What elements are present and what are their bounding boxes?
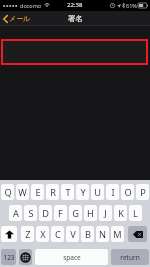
staticText: space [63,253,81,262]
button[interactable]: A [9,205,22,221]
staticText: C [55,228,61,241]
staticText: docomo [20,2,42,9]
staticText: 22:38 [67,1,83,9]
staticText: 署名 [68,14,83,23]
button[interactable]: B [81,226,94,242]
staticText: F [58,207,63,220]
staticText: メール [9,14,31,23]
button[interactable]: N [96,226,109,242]
staticText: J [104,207,107,220]
button[interactable]: 123 [1,249,16,265]
button[interactable]: E [31,184,44,200]
button[interactable]: K [114,205,127,221]
staticText: V [70,228,76,241]
button[interactable]: X [36,226,49,242]
staticText: R [50,186,56,199]
button[interactable]: T [61,184,74,200]
button[interactable]: V [66,226,79,242]
staticText: 123 [3,253,15,262]
staticText: K [118,207,124,220]
button[interactable]: W [16,184,29,200]
button[interactable]: Q [1,184,14,200]
button[interactable]: F [54,205,67,221]
staticText: H [87,207,94,220]
staticText: return [120,253,140,262]
staticText: U [94,186,101,199]
staticText: X [40,228,46,241]
staticText: W [18,186,27,199]
button[interactable]: O [121,184,134,200]
button[interactable]: Shift [1,226,17,242]
button[interactable]: C [51,226,64,242]
staticText: B [85,228,91,241]
button[interactable]: L [129,205,142,221]
staticText: I [111,186,115,199]
button[interactable]: return [111,249,149,265]
staticText: A [13,207,19,220]
button[interactable]: I [106,184,119,200]
button[interactable]: M [111,226,124,242]
button[interactable]: Delete [128,226,147,242]
staticText: E [35,186,41,199]
staticText: D [42,207,49,220]
button[interactable]: メール [1,12,33,25]
button[interactable]: D [39,205,52,221]
button[interactable]: Next keyboard [19,249,32,265]
staticText: Z [25,228,31,241]
button[interactable]: G [69,205,82,221]
button[interactable]: H [84,205,97,221]
button[interactable]: U [91,184,104,200]
staticText: M [113,228,122,241]
button[interactable]: Y [76,184,89,200]
button[interactable]: S [24,205,37,221]
staticText: P [140,186,146,199]
staticText: Q [4,186,12,199]
button[interactable]: Z [21,226,34,242]
staticText: T [65,186,71,199]
button[interactable]: R [46,184,59,200]
button[interactable]: P [136,184,149,200]
staticText: Y [80,186,86,199]
staticText: N [99,228,106,241]
staticText: G [72,207,79,220]
button[interactable]: J [99,205,112,221]
staticText: O [124,186,132,199]
staticText: S [28,207,34,220]
staticText: L [133,207,138,220]
staticText: 61% [126,2,137,9]
button[interactable]: space [35,249,108,265]
